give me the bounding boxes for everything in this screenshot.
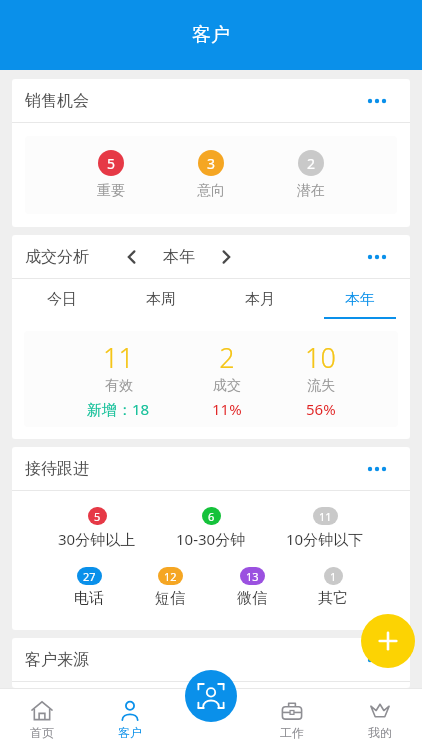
button[interactable]: 13 [237,567,267,608]
button[interactable]: Previous period [115,240,149,274]
staticText: 首页 [30,725,54,740]
staticText: 短信 [155,589,185,608]
staticText: 12 [164,569,177,584]
staticText: 10 [305,339,336,376]
staticText: 成交 [213,377,241,395]
button[interactable]: 2 [297,150,325,200]
staticText: 今日 [47,290,77,309]
staticText: 接待跟进 [25,459,89,479]
staticText: 其它 [318,589,348,608]
button[interactable]: 5 [97,150,125,200]
button[interactable]: 2 [212,339,242,419]
staticText: 销售机会 [25,91,89,111]
staticText: 本周 [146,290,176,309]
button[interactable]: 12 [155,567,185,608]
button[interactable]: More options for 成交分析 [357,240,397,274]
staticText: 客户 [118,725,142,740]
button[interactable]: More options for 客户来源 [357,643,397,677]
button[interactable]: 1 [318,567,348,608]
staticText: 本年 [345,290,375,309]
button[interactable]: 本周 [111,279,210,319]
staticText: 工作 [280,725,304,740]
staticText: 11 [103,339,134,376]
staticText: 10-30分钟 [176,529,246,549]
button[interactable]: 首页 [0,688,84,750]
staticText: 5 [107,154,116,173]
staticText: 13 [246,569,259,584]
button[interactable]: 本年 [310,279,410,319]
staticText: 11 [319,509,332,524]
staticText: 电话 [74,589,104,608]
staticText: 成交分析 [25,247,89,267]
staticText: 56% [306,399,336,419]
staticText: 意向 [197,182,225,200]
staticText: 客户 [192,23,230,47]
staticText: 1 [330,569,337,584]
staticText: 有效 [105,377,133,395]
button[interactable]: 3 [197,150,225,200]
staticText: 5 [94,509,101,524]
button[interactable]: 5 [58,507,136,549]
button[interactable]: 27 [74,567,104,608]
staticText: 2 [219,339,235,376]
staticText: 30分钟以上 [58,529,136,549]
staticText: 10分钟以下 [286,529,364,549]
staticText: 新增：18 [87,399,150,419]
button[interactable]: 今日 [12,279,111,319]
staticText: 重要 [97,182,125,200]
button[interactable]: More options for 销售机会 [357,84,397,118]
button[interactable]: 6 [176,507,246,549]
button[interactable]: 工作 [250,688,334,750]
button[interactable]: 11 [286,507,364,549]
staticText: 潜在 [297,182,325,200]
staticText: 11% [212,399,242,419]
button[interactable]: 本月 [210,279,310,319]
staticText: 3 [207,154,216,173]
button[interactable]: Scan customer [185,670,237,722]
staticText: 流失 [307,377,335,395]
staticText: 客户来源 [25,650,89,670]
button[interactable]: Next period [209,240,243,274]
staticText: 微信 [237,589,267,608]
button[interactable]: 10 [305,339,336,419]
staticText: 27 [83,569,96,584]
staticText: 我的 [368,725,392,740]
button[interactable]: More options for 接待跟进 [357,452,397,486]
staticText: 2 [307,154,316,173]
staticText: 本年 [163,247,195,267]
button[interactable]: 我的 [338,688,422,750]
staticText: 本月 [245,290,275,309]
button[interactable]: 11 [87,339,150,419]
button[interactable]: 客户 [88,688,172,750]
staticText: 6 [208,509,215,524]
button[interactable]: Add [361,614,415,668]
